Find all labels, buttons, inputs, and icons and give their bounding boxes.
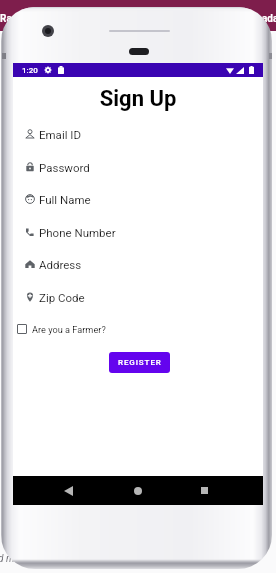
button[interactable]: Home (115, 476, 161, 505)
button[interactable]: Are you a Farmer? (17, 322, 106, 336)
button[interactable]: Email ID (25, 123, 263, 145)
staticText: ada (262, 13, 276, 25)
button[interactable]: Phone Number (25, 221, 263, 243)
staticText: Are you a Farmer? (32, 324, 106, 335)
staticText: Sign Up (13, 86, 263, 112)
staticText: 1:20 (22, 66, 38, 75)
staticText: Password (39, 161, 90, 174)
button[interactable]: Zip Code (25, 286, 263, 308)
staticText: Rac (0, 13, 17, 25)
button[interactable]: Password (25, 156, 263, 178)
button[interactable]: Address (25, 253, 263, 275)
button[interactable]: Full Name (25, 188, 263, 210)
button[interactable]: Recent apps (181, 476, 227, 505)
button[interactable]: REGISTER (109, 352, 170, 373)
staticText: Email ID (39, 128, 81, 141)
staticText: Address (39, 258, 82, 271)
staticText: REGISTER (118, 358, 162, 367)
button[interactable]: Back (45, 476, 91, 505)
staticText: Full Name (39, 193, 91, 206)
staticText: Zip Code (39, 291, 85, 304)
staticText: d mo (0, 553, 20, 565)
staticText: Phone Number (39, 226, 116, 239)
